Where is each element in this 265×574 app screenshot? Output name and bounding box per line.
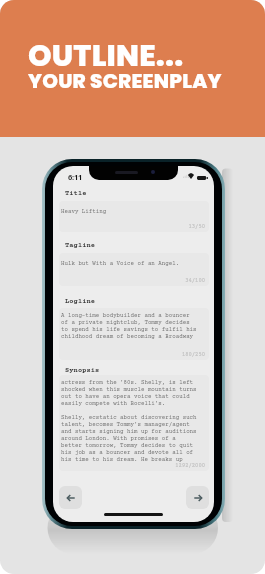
button[interactable]: actress from the '80s. Shelly, is left	[59, 375, 209, 471]
staticText: better tomorrow, Tommy decides to quit	[61, 442, 194, 449]
staticText: actress from the '80s. Shelly, is left	[61, 379, 194, 386]
staticText: his job as a bouncer and devote all of	[61, 449, 194, 456]
staticText: Tagline	[65, 242, 96, 250]
staticText: out to have an opera voice that could	[61, 393, 190, 400]
staticText: A long-time bodybuilder and a bouncer	[61, 312, 190, 319]
staticText: 1292/2000	[175, 463, 205, 469]
staticText: OUTLINE...	[28, 35, 184, 77]
staticText: 13/50	[188, 224, 205, 230]
staticText: easily compete with Bocelli's.	[61, 400, 166, 407]
staticText: 180/250	[181, 352, 205, 358]
staticText: 34/100	[185, 278, 205, 284]
button[interactable]: Next	[186, 486, 209, 509]
staticText: to spend his life savings to fulfil his	[61, 326, 197, 333]
staticText: and starts signing him up for auditions	[61, 428, 197, 435]
button[interactable]: A long-time bodybuilder and a bouncer	[59, 308, 209, 360]
staticText: talent, becomes Tommy's manager/agent	[61, 421, 190, 428]
staticText: Shelly, ecstatic about discovering such	[61, 414, 197, 421]
button[interactable]: Hulk but With a Voice of an Angel.	[59, 253, 209, 286]
staticText: Hulk but With a Voice of an Angel.	[61, 260, 180, 267]
staticText: Logline	[65, 298, 96, 306]
staticText: Synopsis	[65, 367, 100, 375]
staticText: childhood dream of becoming a Broadway	[61, 333, 194, 340]
staticText: 6:11	[68, 172, 83, 182]
staticText: YOUR SCREENPLAY	[28, 67, 222, 95]
staticText: of a private nightclub, Tommy decides	[61, 319, 190, 326]
staticText: his time to his dream. He breaks up	[61, 456, 183, 463]
staticText: Heavy Lifting	[61, 208, 107, 215]
staticText: shocked when this muscle mountain turns	[61, 386, 197, 393]
button[interactable]: Heavy Lifting	[59, 201, 209, 232]
staticText: Title	[65, 190, 87, 198]
staticText: around London. With promises of a	[61, 435, 176, 442]
button[interactable]: Back	[59, 486, 82, 509]
